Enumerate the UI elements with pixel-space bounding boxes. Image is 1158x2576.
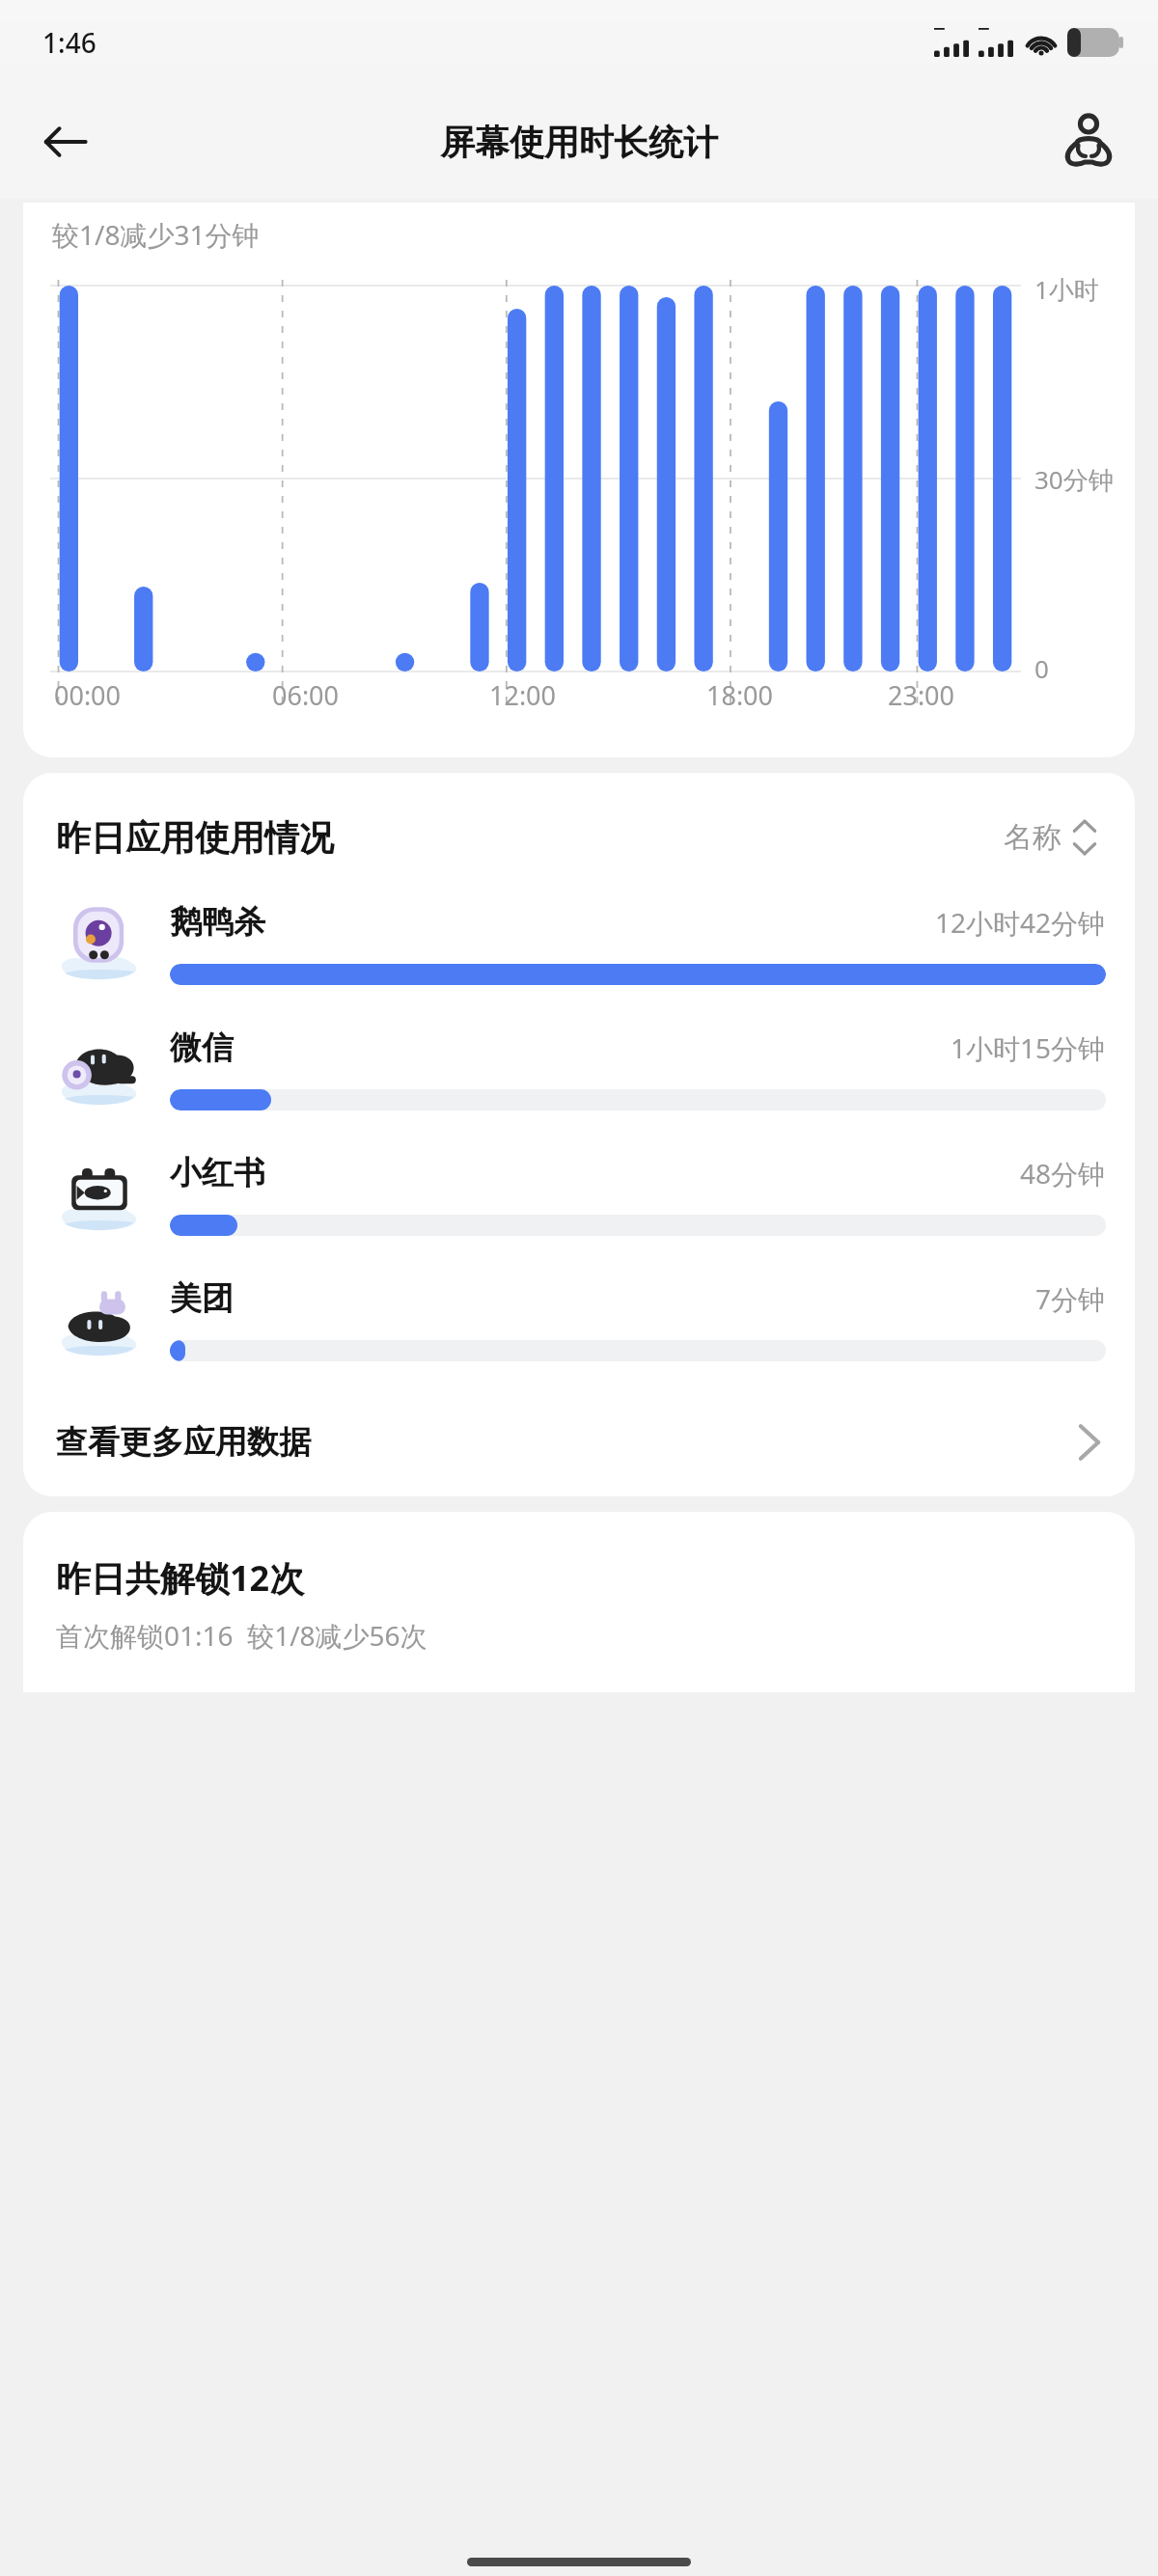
button[interactable]: 名称 xyxy=(1000,813,1102,862)
staticText: 30分钟 xyxy=(1034,462,1114,497)
staticText: 较1/8减少31分钟 xyxy=(52,216,260,253)
staticText: 昨日应用使用情况 xyxy=(56,816,334,860)
button[interactable]: 小红书 xyxy=(23,1132,1135,1257)
button[interactable]: 鹅鸭杀 xyxy=(23,881,1135,1006)
staticText: 18:00 xyxy=(706,677,774,713)
button[interactable]: 昨日共解锁12次 xyxy=(23,1512,1135,1692)
staticText: 鹅鸭杀 xyxy=(170,902,265,943)
staticText: 首次解锁01:16 较1/8减少56次 xyxy=(56,1617,427,1654)
staticText: 12:00 xyxy=(489,677,557,713)
staticText: 00:00 xyxy=(54,677,122,713)
staticText: 小红书 xyxy=(170,1153,265,1193)
staticText: 7分钟 xyxy=(1035,1280,1106,1317)
staticText: 微信 xyxy=(170,1028,234,1068)
staticText: 屏幕使用时长统计 xyxy=(440,121,718,164)
button[interactable]: 美团 xyxy=(23,1257,1135,1383)
staticText: 1小时15分钟 xyxy=(951,1029,1106,1066)
staticText: 12小时42分钟 xyxy=(935,904,1106,941)
button[interactable]: 微信 xyxy=(23,1006,1135,1132)
staticText: 1:46 xyxy=(42,24,96,61)
staticText: 名称 xyxy=(1004,819,1061,856)
button[interactable]: 查看更多应用数据 xyxy=(23,1394,1135,1491)
button[interactable]: Back xyxy=(27,103,104,180)
staticText: 48分钟 xyxy=(1020,1155,1106,1192)
staticText: 1小时 xyxy=(1034,272,1099,307)
staticText: 查看更多应用数据 xyxy=(56,1422,311,1463)
staticText: 23:00 xyxy=(888,677,955,713)
staticText: 昨日共解锁12次 xyxy=(56,1554,305,1602)
staticText: 0 xyxy=(1034,651,1049,685)
staticText: 美团 xyxy=(170,1278,234,1319)
button[interactable]: Focus mode xyxy=(1048,101,1129,182)
staticText: 06:00 xyxy=(272,677,340,713)
